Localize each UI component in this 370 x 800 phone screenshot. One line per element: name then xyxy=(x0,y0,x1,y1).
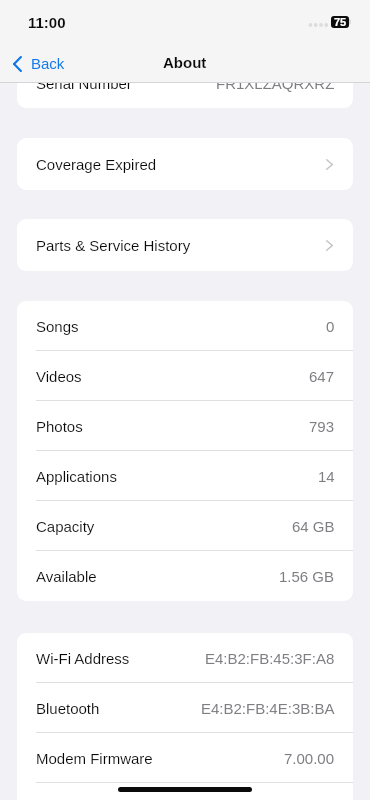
button[interactable]: Photos xyxy=(17,401,353,451)
staticText: Available xyxy=(36,568,97,585)
staticText: Videos xyxy=(36,368,82,385)
staticText: 647 xyxy=(309,368,335,385)
button[interactable]: Bluetooth xyxy=(17,683,353,733)
button[interactable]: Parts & Service History xyxy=(17,219,353,271)
staticText: Bluetooth xyxy=(36,700,100,717)
other: Battery 75 percent xyxy=(331,16,349,28)
staticText: FR1XLZAQRXRZ xyxy=(216,75,335,92)
staticText: Coverage Expired xyxy=(36,156,157,173)
button[interactable]: Coverage Expired xyxy=(17,138,353,190)
staticText: 11:00 xyxy=(28,14,66,31)
staticText: 14 xyxy=(318,468,335,485)
button[interactable]: Wi-Fi Address xyxy=(17,633,353,683)
button[interactable]: SEID xyxy=(17,783,353,800)
button[interactable]: Capacity xyxy=(17,501,353,551)
staticText: Back xyxy=(31,55,65,72)
staticText: Modem Firmware xyxy=(36,750,153,767)
staticText: Wi-Fi Address xyxy=(36,650,130,667)
staticText: 64 GB xyxy=(292,518,335,535)
staticText: 793 xyxy=(309,418,335,435)
staticText: Serial Number xyxy=(36,75,132,92)
staticText: About xyxy=(163,54,207,71)
staticText: Applications xyxy=(36,468,117,485)
button[interactable]: Available xyxy=(17,551,353,601)
staticText: Parts & Service History xyxy=(36,237,191,254)
button[interactable]: Videos xyxy=(17,351,353,401)
button[interactable]: Back xyxy=(9,50,69,77)
button[interactable]: Applications xyxy=(17,451,353,501)
button[interactable]: Serial Number xyxy=(17,58,353,108)
button[interactable]: Songs xyxy=(17,301,353,351)
staticText: 1.56 GB xyxy=(279,568,335,585)
staticText: 75 xyxy=(334,16,347,28)
staticText: 0 xyxy=(326,318,335,335)
staticText: Songs xyxy=(36,318,79,335)
button[interactable]: Modem Firmware xyxy=(17,733,353,783)
staticText: Photos xyxy=(36,418,83,435)
staticText: Capacity xyxy=(36,518,95,535)
staticText: E4:B2:FB:45:3F:A8 xyxy=(205,650,335,667)
staticText: 7.00.00 xyxy=(284,750,335,767)
staticText: E4:B2:FB:4E:3B:BA xyxy=(201,700,335,717)
